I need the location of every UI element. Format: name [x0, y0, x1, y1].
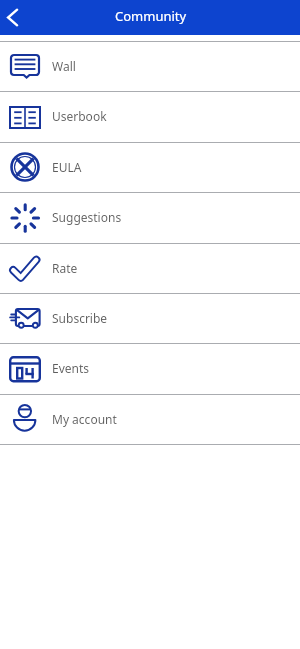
button[interactable]: Rate	[0, 243, 300, 293]
staticText: Wall	[52, 58, 76, 74]
button[interactable]: Userbook	[0, 91, 300, 141]
button[interactable]: Events	[0, 343, 300, 393]
button[interactable]: My account	[0, 394, 300, 444]
staticText: Events	[52, 360, 90, 376]
staticText: EULA	[52, 159, 82, 175]
staticText: Suggestions	[52, 209, 122, 225]
button[interactable]: Subscribe	[0, 293, 300, 343]
button[interactable]: Suggestions	[0, 192, 300, 242]
staticText: Community	[115, 7, 187, 25]
staticText: My account	[52, 411, 117, 427]
staticText: Subscribe	[52, 310, 108, 326]
staticText: Rate	[52, 260, 78, 276]
button[interactable]: EULA	[0, 142, 300, 192]
button[interactable]: Back	[0, 0, 24, 35]
button[interactable]: Wall	[0, 41, 300, 91]
staticText: Userbook	[52, 108, 107, 124]
